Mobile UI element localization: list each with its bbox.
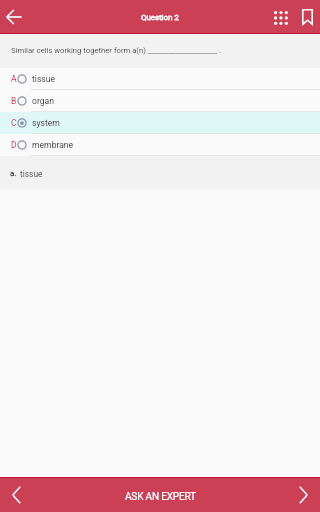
button[interactable]: Bookmark <box>294 0 319 34</box>
staticText: Similar cells working together form a(n)… <box>11 46 222 55</box>
staticText: A <box>11 74 17 84</box>
button[interactable]: B <box>0 90 320 112</box>
staticText: system <box>32 118 60 128</box>
staticText: D <box>11 140 17 150</box>
staticText: B <box>11 96 17 106</box>
button[interactable]: Apps <box>267 0 294 34</box>
button[interactable]: ASK AN EXPERT <box>101 481 220 509</box>
staticText: membrane <box>32 140 74 150</box>
staticText: ASK AN EXPERT <box>125 491 196 503</box>
staticText: tissue <box>20 169 43 179</box>
button[interactable]: Previous question <box>0 477 33 512</box>
staticText: organ <box>32 96 54 106</box>
staticText: Question 2 <box>141 12 179 21</box>
button[interactable]: A <box>0 68 320 90</box>
button[interactable]: Next question <box>287 477 320 512</box>
staticText: tissue <box>32 74 56 84</box>
button[interactable]: D <box>0 134 320 156</box>
button[interactable]: C <box>0 112 320 134</box>
button[interactable]: Back <box>0 0 28 34</box>
staticText: C <box>11 118 17 128</box>
staticText: a. <box>10 169 17 178</box>
